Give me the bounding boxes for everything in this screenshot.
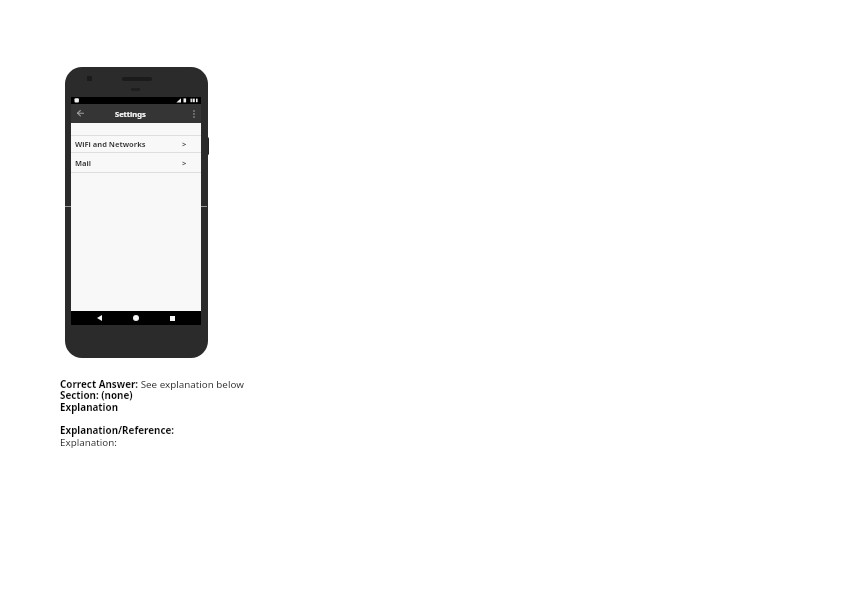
- button[interactable]: WiFi and Networks: [71, 136, 201, 152]
- button[interactable]: [187, 104, 201, 123]
- staticText: Settings: [115, 109, 146, 119]
- staticText: Correct Answer: See explanation below: [60, 378, 244, 391]
- staticText: Explanation: [60, 401, 119, 414]
- button[interactable]: [127, 311, 145, 325]
- staticText: Section: (none): [60, 389, 133, 402]
- button[interactable]: [163, 311, 181, 325]
- staticText: >: [182, 139, 187, 149]
- staticText: Mail: [75, 158, 92, 168]
- staticText: WiFi and Networks: [75, 139, 146, 149]
- button[interactable]: [90, 311, 108, 325]
- button[interactable]: [71, 104, 89, 123]
- staticText: >: [182, 158, 187, 168]
- staticText: Explanation:: [60, 436, 117, 449]
- button[interactable]: Mail: [71, 153, 201, 172]
- staticText: Explanation/Reference:: [60, 424, 175, 437]
